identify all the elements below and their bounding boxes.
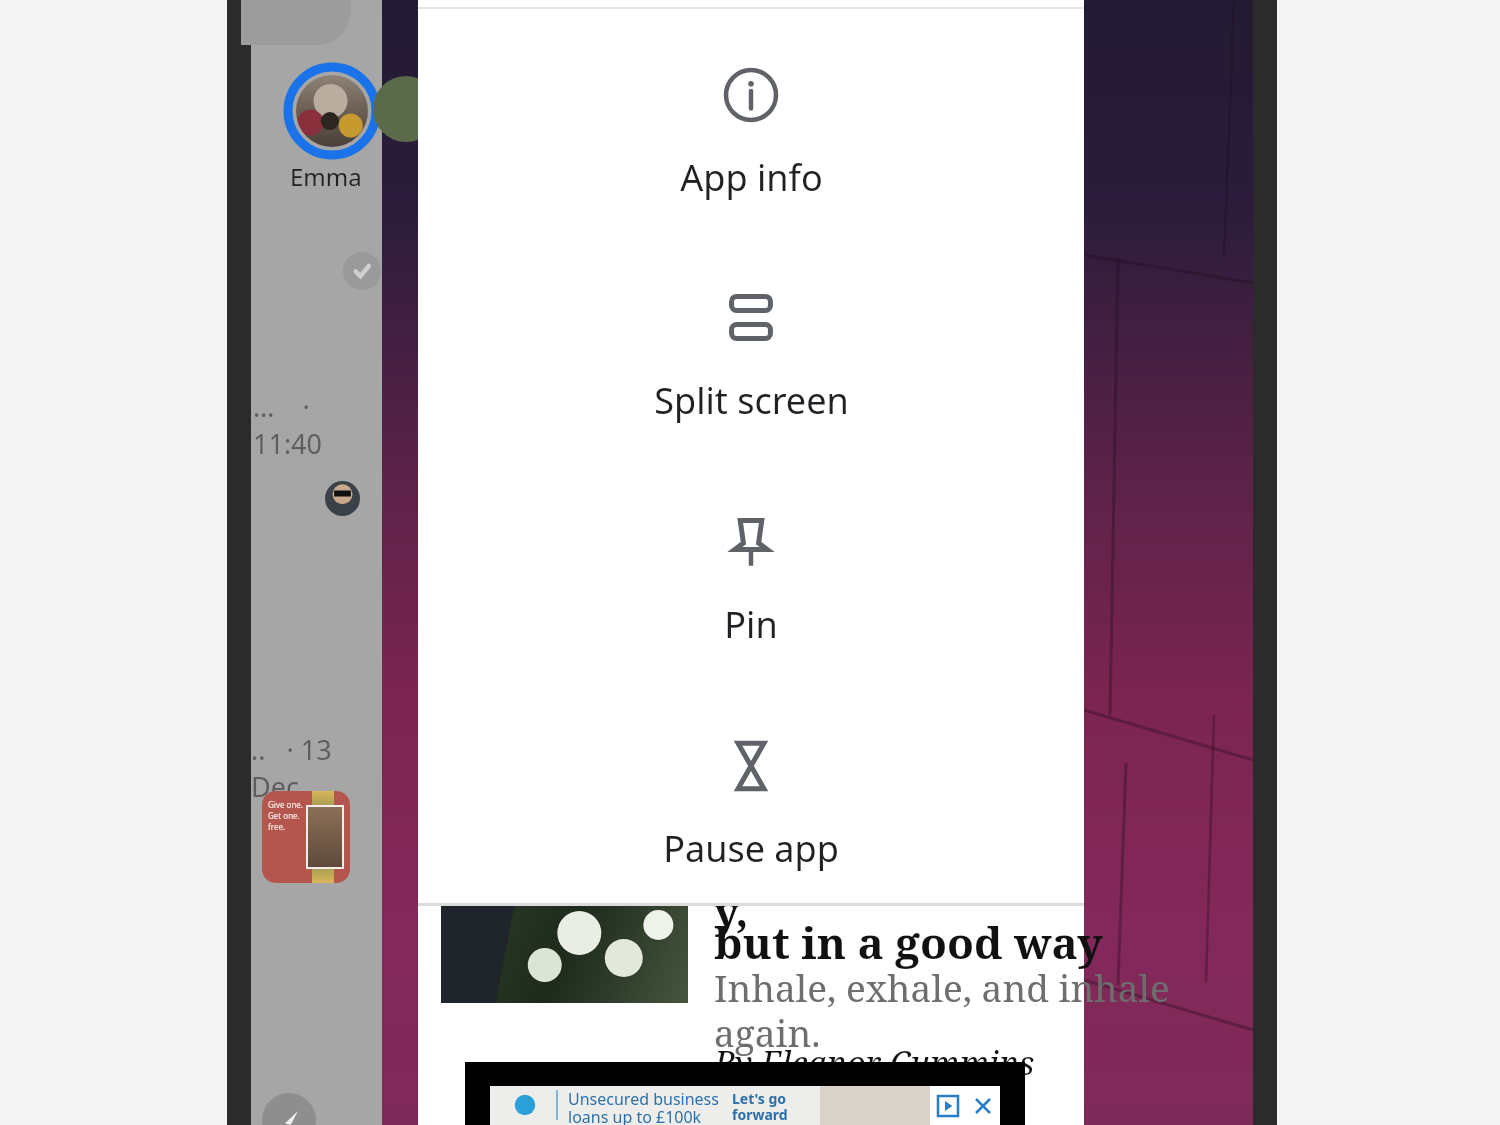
staticText: Emma: [290, 160, 362, 193]
staticText: Split screen: [654, 376, 849, 425]
button[interactable]: Split screen: [418, 288, 1084, 448]
staticText: Pin: [724, 600, 778, 649]
staticText: Get one.: [268, 810, 300, 821]
staticText: Pause app: [663, 824, 839, 873]
button[interactable]: App info: [418, 65, 1084, 225]
staticText: y,: [714, 880, 749, 940]
staticText: free.: [268, 821, 286, 832]
staticText: Unsecured business loans up to £100k: [568, 1088, 719, 1125]
staticText: … · 11:40: [253, 388, 384, 462]
staticText: Give one.: [268, 799, 303, 810]
button[interactable]: Pause app: [418, 736, 1084, 896]
staticText: but in a good way: [714, 912, 1103, 972]
staticText: Let's go forward: [732, 1089, 788, 1124]
staticText: By Eleanor Cummins: [714, 1040, 1035, 1085]
staticText: Inhale, exhale, and inhale again.: [714, 962, 1170, 1058]
button[interactable]: Pin: [418, 512, 1084, 672]
staticText: .. · 13 Dec: [251, 731, 382, 805]
staticText: App info: [680, 153, 823, 202]
